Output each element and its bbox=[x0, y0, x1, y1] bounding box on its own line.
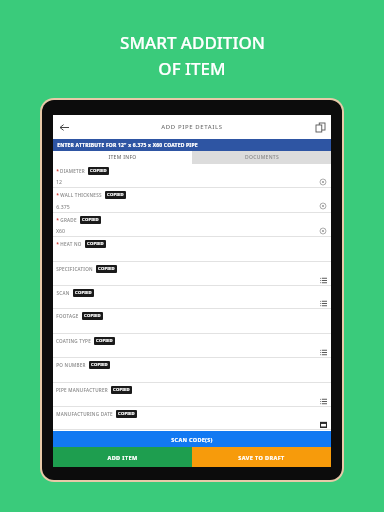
staticText: SCAN CODE(S) bbox=[171, 436, 213, 443]
staticText: ITEM INFO bbox=[108, 154, 137, 161]
button[interactable]: * bbox=[53, 188, 331, 213]
button[interactable]: Select from list bbox=[318, 275, 328, 285]
staticText: ADD ITEM bbox=[107, 454, 138, 461]
staticText: SPECIFICATION bbox=[56, 266, 93, 272]
button[interactable]: Select from list bbox=[318, 298, 328, 308]
staticText: MANUFACTURING DATE bbox=[56, 411, 113, 417]
staticText: * bbox=[56, 168, 59, 175]
staticText: COPIED bbox=[113, 387, 130, 393]
button[interactable]: Back bbox=[53, 116, 75, 138]
button[interactable]: Copy bbox=[309, 116, 331, 138]
staticText: COPIED bbox=[82, 217, 99, 223]
staticText: PIPE MANUFACTURER bbox=[56, 387, 108, 393]
staticText: SMART ADDITION bbox=[120, 31, 265, 54]
staticText: ADD PIPE DETAILS bbox=[161, 123, 223, 131]
button[interactable]: PO NUMBER bbox=[53, 358, 331, 383]
staticText: COPIED bbox=[75, 290, 92, 296]
button[interactable]: FOOTAGE bbox=[53, 309, 331, 334]
button[interactable]: ITEM INFO bbox=[53, 151, 192, 164]
staticText: SCAN bbox=[56, 290, 70, 296]
staticText: HEAT NO bbox=[60, 241, 82, 247]
staticText: PO NUMBER bbox=[56, 362, 86, 368]
staticText: FOOTAGE bbox=[56, 313, 79, 319]
staticText: X60 bbox=[56, 227, 65, 234]
button[interactable]: SPECIFICATION bbox=[53, 262, 331, 286]
staticText: ENTER ATTRIBUTE FOR 12" x 6.375 x X60 CO… bbox=[57, 142, 198, 149]
staticText: WALL THICKNESS bbox=[60, 192, 102, 198]
button[interactable]: PIPE MANUFACTURER bbox=[53, 383, 331, 407]
staticText: * bbox=[56, 217, 59, 224]
staticText: COPIED bbox=[98, 266, 115, 272]
staticText: COPIED bbox=[91, 362, 108, 368]
staticText: DOCUMENTS bbox=[245, 154, 279, 161]
button[interactable]: COATING TYPE bbox=[53, 334, 331, 358]
button[interactable]: DOCUMENTS bbox=[192, 151, 331, 164]
button[interactable]: Clear bbox=[318, 226, 328, 236]
staticText: COPIED bbox=[107, 192, 124, 198]
staticText: COPIED bbox=[118, 411, 135, 417]
staticText: OF ITEM bbox=[158, 57, 226, 80]
button[interactable]: SCAN bbox=[53, 286, 331, 309]
button[interactable]: MANUFACTURING DATE bbox=[53, 407, 331, 430]
staticText: GRADE bbox=[60, 217, 77, 223]
button[interactable]: Select from list bbox=[318, 396, 328, 406]
button[interactable]: Select from list bbox=[318, 347, 328, 357]
button[interactable]: Clear bbox=[318, 201, 328, 211]
staticText: COPIED bbox=[96, 338, 113, 344]
button[interactable]: * bbox=[53, 213, 331, 237]
staticText: SAVE TO DRAFT bbox=[238, 454, 285, 461]
staticText: 6.375 bbox=[56, 203, 70, 210]
button[interactable]: ADD ITEM bbox=[53, 447, 192, 467]
staticText: * bbox=[56, 192, 59, 199]
staticText: COPIED bbox=[84, 313, 101, 319]
button[interactable]: SAVE TO DRAFT bbox=[192, 447, 331, 467]
staticText: DIAMETER bbox=[60, 168, 85, 174]
button[interactable]: * bbox=[53, 237, 331, 262]
staticText: * bbox=[56, 241, 59, 248]
button[interactable]: SCAN CODE(S) bbox=[53, 431, 331, 447]
button[interactable]: Clear bbox=[318, 177, 328, 187]
staticText: 12 bbox=[56, 178, 62, 185]
staticText: COPIED bbox=[90, 168, 107, 174]
staticText: COPIED bbox=[87, 241, 104, 247]
button[interactable]: * bbox=[53, 164, 331, 188]
button[interactable]: Pick date bbox=[318, 419, 328, 429]
staticText: COATING TYPE bbox=[56, 338, 91, 344]
